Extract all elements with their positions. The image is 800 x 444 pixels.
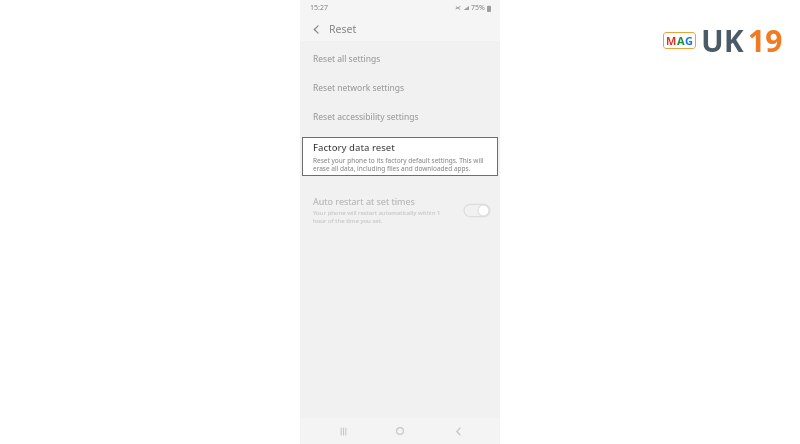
staticText: Reset accessibility settings — [313, 111, 419, 123]
staticText: 19 — [748, 20, 783, 61]
staticText: Reset all settings — [313, 53, 381, 65]
staticText: A — [677, 33, 685, 48]
button[interactable]: Factory data reset — [302, 137, 498, 176]
button[interactable]: Back — [443, 418, 473, 444]
staticText: Factory data reset — [313, 141, 395, 154]
staticText: G — [685, 33, 693, 48]
button[interactable]: Reset network settings — [300, 73, 500, 102]
button[interactable]: Home — [385, 418, 415, 444]
staticText: UK — [701, 20, 744, 61]
staticText: 75% — [471, 3, 485, 13]
staticText: Reset — [329, 22, 357, 36]
button[interactable]: Back — [306, 19, 326, 39]
staticText: Auto restart at set times — [313, 195, 415, 207]
staticText: 15:27 — [310, 3, 328, 13]
staticText: Reset network settings — [313, 82, 405, 94]
button[interactable]: Auto restart toggle — [464, 203, 490, 218]
button[interactable]: Reset accessibility settings — [300, 102, 500, 131]
staticText: M — [666, 33, 677, 48]
button[interactable]: Reset all settings — [300, 44, 500, 73]
staticText: Reset your phone to its factory default … — [313, 156, 484, 173]
staticText: Your phone will restart automatically wi… — [313, 209, 441, 225]
button[interactable]: Auto restart at set times — [300, 191, 500, 229]
button[interactable]: Recents — [328, 418, 358, 444]
